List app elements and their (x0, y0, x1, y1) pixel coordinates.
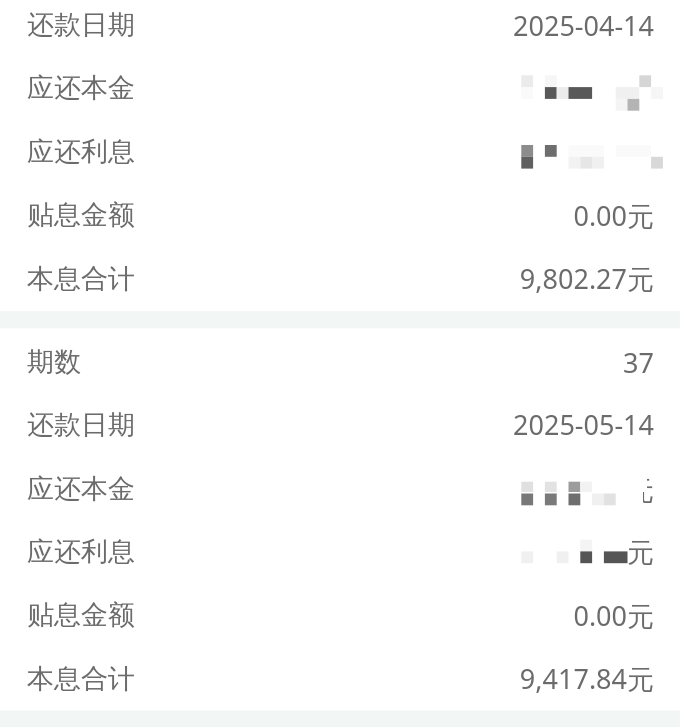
other: 还款计划明细 (0, 0, 680, 727)
button[interactable]: 贴息金额 (0, 583, 680, 647)
staticText: 12,345.67元 (504, 70, 654, 107)
staticText: 应还本金 (27, 472, 135, 506)
staticText: 9,417.84元 (519, 660, 654, 697)
staticText: 期数 (27, 345, 81, 379)
staticText: 本息合计 (27, 262, 135, 296)
button[interactable]: 应还利息 (0, 120, 680, 183)
button[interactable]: 本息合计 (0, 647, 680, 710)
button[interactable]: 贴息金额 (0, 183, 680, 247)
staticText: 1,234.56元 (519, 133, 654, 170)
button[interactable]: 还款日期 (0, 0, 680, 57)
staticText: 贴息金额 (27, 198, 135, 232)
staticText: 2025-04-14 (513, 7, 654, 44)
button[interactable]: 应还本金 (0, 457, 680, 521)
staticText: 2025-05-14 (513, 406, 654, 443)
staticText: 还款日期 (27, 8, 135, 42)
staticText: 12,345.67元 (504, 471, 654, 508)
staticText: 9,802.27元 (519, 260, 654, 297)
button[interactable]: 还款日期 (0, 393, 680, 456)
staticText: 应还本金 (27, 71, 135, 105)
staticText: 37 (623, 344, 654, 381)
staticText: 应还利息 (27, 535, 135, 569)
staticText: 还款日期 (27, 408, 135, 442)
staticText: 0.00元 (573, 597, 654, 634)
staticText: 应还利息 (27, 135, 135, 169)
button[interactable]: 本息合计 (0, 247, 680, 310)
staticText: 本息合计 (27, 662, 135, 696)
button[interactable]: 应还本金 (0, 56, 680, 120)
staticText: 贴息金额 (27, 598, 135, 632)
button[interactable]: 应还利息 (0, 520, 680, 583)
staticText: 1,234.56元 (519, 533, 654, 570)
staticText: 0.00元 (573, 197, 654, 234)
button[interactable]: 期数 (0, 330, 680, 394)
